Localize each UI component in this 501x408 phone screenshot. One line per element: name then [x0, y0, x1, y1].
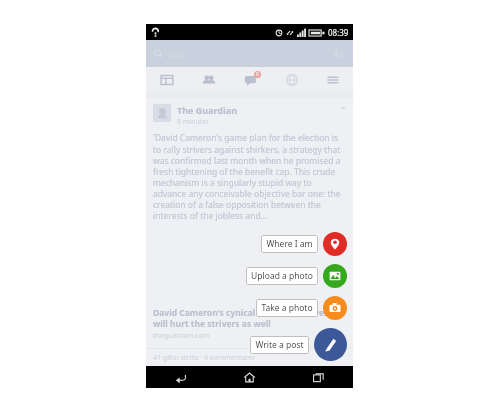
staticText: Upload a photo: [251, 270, 313, 282]
staticText: Where I am: [266, 238, 313, 250]
button[interactable]: Where I am: [261, 235, 318, 253]
staticText: David Cameron's cynical attack on 'skive…: [153, 307, 346, 329]
staticText: 41 gillar detta · 4 kommentarer: [153, 353, 256, 363]
staticText: Take a photo: [261, 302, 313, 314]
staticText: 08:39: [328, 27, 349, 38]
button[interactable]: Notifications: [271, 67, 312, 92]
button[interactable]: Upload a photo: [323, 264, 347, 288]
button[interactable]: The Guardian: [146, 98, 353, 127]
button[interactable]: Home: [215, 366, 284, 388]
button[interactable]: Messages: [230, 67, 271, 92]
button[interactable]: David Cameron's cynical attack on 'skive…: [146, 307, 353, 341]
staticText: 6: [256, 71, 259, 78]
staticText: Sök: [169, 48, 185, 60]
button[interactable]: Where I am: [323, 232, 347, 256]
button[interactable]: Upload a photo: [246, 267, 318, 285]
button[interactable]: Take a photo: [256, 299, 318, 317]
staticText: The Guardian: [177, 104, 237, 116]
staticText: Write a post: [255, 339, 304, 351]
button[interactable]: Recents: [284, 366, 353, 388]
staticText: 8 minuter: [177, 117, 210, 127]
button[interactable]: News Feed: [146, 67, 188, 92]
button[interactable]: Friend requests: [331, 47, 345, 61]
button[interactable]: Menu: [312, 67, 353, 92]
button[interactable]: Friends: [188, 67, 230, 92]
button[interactable]: Take a photo: [323, 296, 347, 320]
button[interactable]: Write a post: [314, 328, 347, 361]
other: Post options: [339, 104, 347, 112]
button[interactable]: Back: [146, 366, 215, 388]
button[interactable]: Write a post: [250, 336, 309, 354]
other: Search: [154, 49, 163, 58]
staticText: 'David Cameron's game plan for the elect…: [153, 132, 346, 222]
staticText: theguardian.com: [153, 331, 210, 341]
